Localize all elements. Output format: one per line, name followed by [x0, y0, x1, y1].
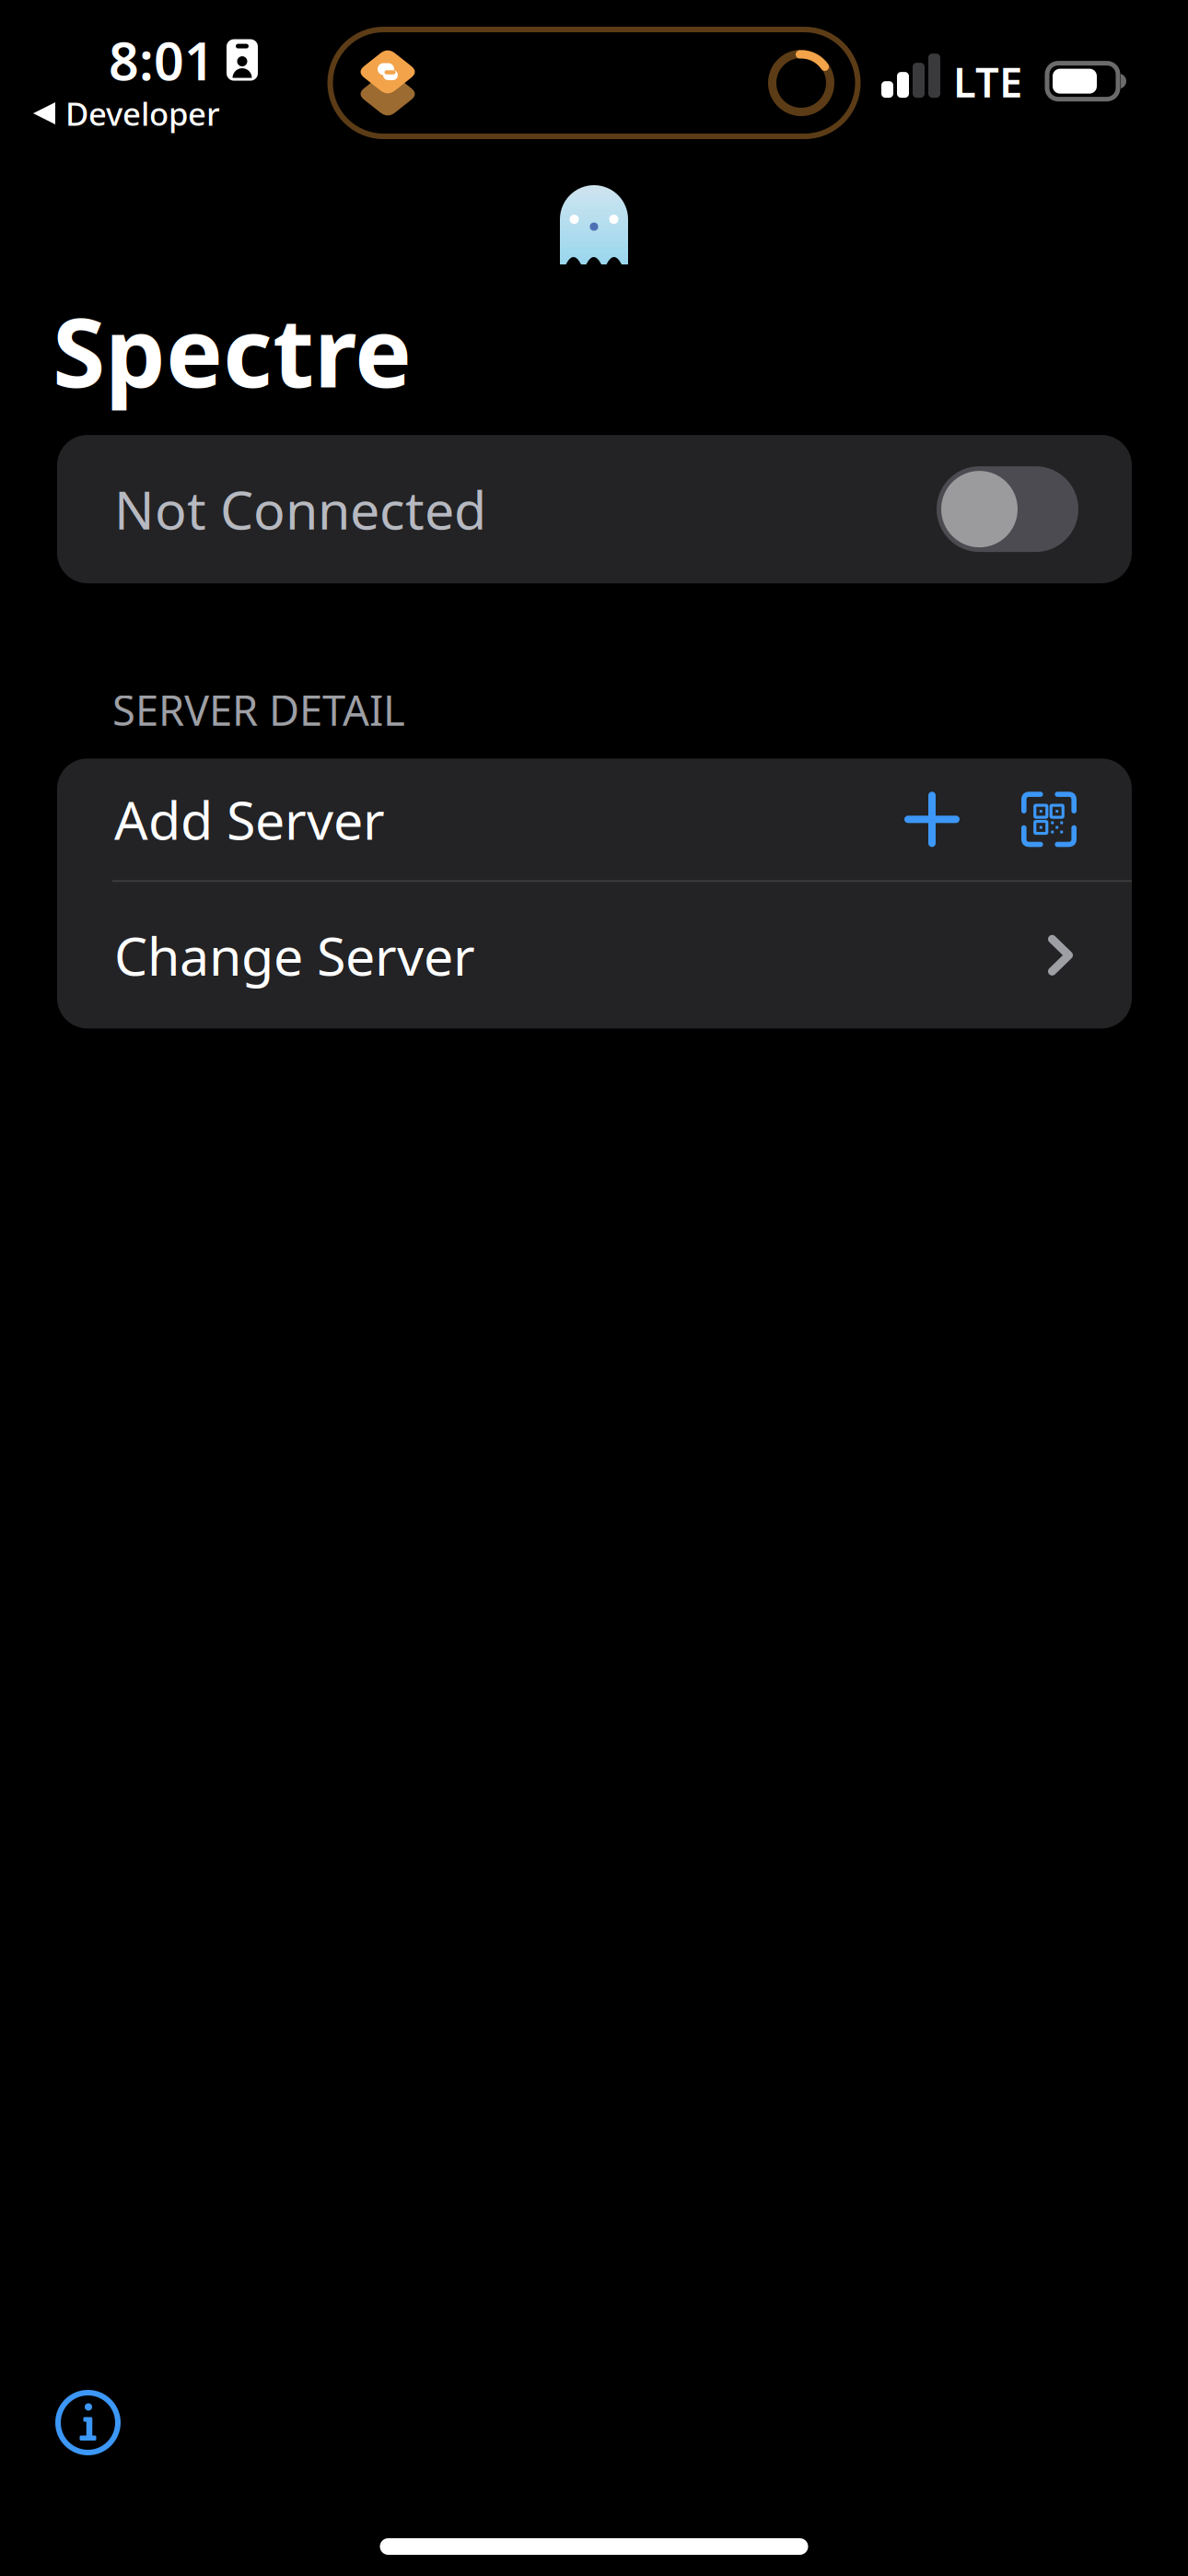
staticText: Spectre — [52, 287, 412, 414]
button[interactable]: Add Server — [57, 759, 1132, 880]
button[interactable]: Information — [0, 2393, 118, 2538]
button[interactable]: Not Connected — [57, 435, 1132, 583]
staticText: Developer — [65, 92, 220, 135]
button[interactable]: Change Server — [57, 882, 1132, 1028]
staticText: SERVER DETAIL — [112, 682, 405, 737]
staticText: Add Server — [114, 784, 385, 854]
staticText: LTE — [953, 53, 1022, 109]
staticText: Change Server — [114, 920, 475, 990]
button[interactable]: Back to Developer — [33, 88, 220, 138]
staticText: 8:01 — [109, 25, 215, 95]
staticText: Not Connected — [114, 474, 486, 544]
